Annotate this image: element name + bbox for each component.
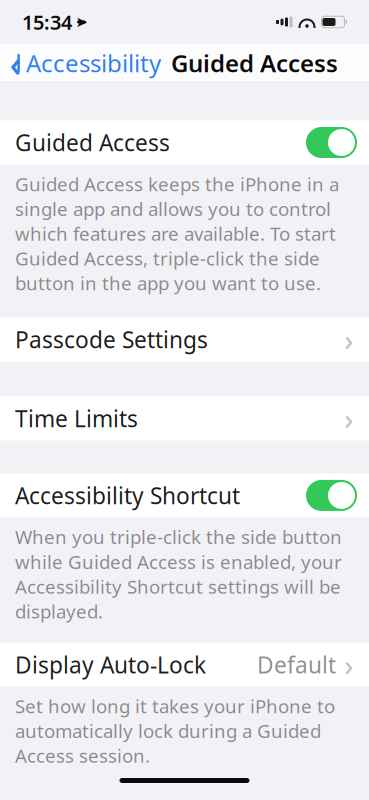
staticText: › xyxy=(344,399,354,438)
staticText: Display Auto-Lock xyxy=(15,650,206,680)
staticText: Accessibility xyxy=(26,47,161,79)
staticText: Default xyxy=(257,650,336,680)
staticText: › xyxy=(344,320,354,359)
staticText: › xyxy=(344,645,354,684)
staticText: Guided Access keeps the iPhone in a sing… xyxy=(15,171,339,295)
button[interactable]: Passcode Settings xyxy=(0,317,369,361)
staticText: Set how long it takes your iPhone to aut… xyxy=(15,694,335,768)
staticText: Time Limits xyxy=(15,403,138,433)
staticText: Guided Access xyxy=(171,47,338,79)
button[interactable]: Guided Access xyxy=(306,127,357,158)
staticText: ➤ xyxy=(75,14,87,30)
staticText: 15:34 xyxy=(22,9,72,35)
button[interactable]: Display Auto-Lock xyxy=(0,643,369,687)
staticText: Guided Access xyxy=(15,127,170,157)
staticText: Accessibility Shortcut xyxy=(15,480,240,510)
button[interactable]: Time Limits xyxy=(0,396,369,440)
button[interactable]: Accessibility Shortcut xyxy=(306,480,357,511)
staticText: When you triple-click the side button wh… xyxy=(15,524,342,624)
staticText: ‹ xyxy=(9,39,21,87)
button[interactable]: ‹ xyxy=(0,44,165,82)
staticText: Passcode Settings xyxy=(15,324,208,354)
